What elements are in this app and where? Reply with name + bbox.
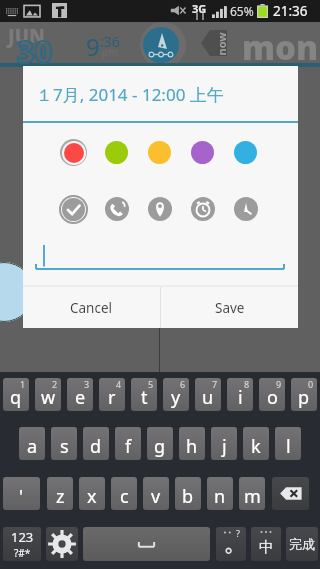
button[interactable]: c bbox=[111, 477, 137, 510]
button[interactable]: Space bbox=[83, 527, 210, 561]
staticText: m bbox=[244, 484, 261, 509]
button[interactable]: i bbox=[227, 378, 253, 411]
staticText: k bbox=[251, 434, 261, 459]
staticText: 9 bbox=[276, 378, 282, 390]
button[interactable]: o bbox=[259, 378, 285, 411]
button[interactable]: t bbox=[131, 378, 157, 411]
button[interactable]: ' bbox=[3, 477, 40, 510]
button[interactable]: r bbox=[99, 378, 125, 411]
button[interactable]: Colour bbox=[224, 131, 267, 173]
staticText: 2 bbox=[52, 378, 58, 390]
staticText: 3G bbox=[192, 1, 207, 16]
staticText: JUN bbox=[8, 23, 45, 49]
staticText: now bbox=[213, 31, 228, 55]
button[interactable]: Cancel bbox=[23, 287, 160, 328]
button[interactable]: Reminder type bbox=[224, 188, 267, 230]
staticText: n bbox=[214, 484, 226, 509]
button[interactable]: q bbox=[3, 378, 29, 411]
staticText: t bbox=[141, 385, 148, 410]
staticText: f bbox=[125, 434, 132, 459]
staticText: ?#* bbox=[14, 546, 31, 560]
button[interactable]: Save bbox=[161, 287, 298, 328]
button[interactable]: d bbox=[83, 427, 109, 460]
staticText: z bbox=[56, 484, 65, 509]
button[interactable]: a bbox=[19, 427, 45, 460]
staticText: 4 bbox=[116, 378, 122, 390]
button[interactable]: k bbox=[243, 427, 269, 460]
button[interactable]: Colour bbox=[95, 131, 138, 173]
staticText: h bbox=[186, 434, 198, 459]
staticText: r bbox=[108, 385, 116, 410]
button[interactable]: y bbox=[163, 378, 189, 411]
button[interactable]: w bbox=[35, 378, 61, 411]
button[interactable]: e bbox=[67, 378, 93, 411]
button[interactable]: Reminder type bbox=[95, 188, 138, 230]
button[interactable]: 完成 bbox=[286, 527, 318, 561]
staticText: 123 bbox=[11, 528, 34, 546]
staticText: １7月, 2014 - 12:00 上午 bbox=[36, 83, 224, 106]
button[interactable]: Settings bbox=[46, 527, 78, 561]
button[interactable]: f bbox=[115, 427, 141, 460]
staticText: j bbox=[222, 434, 227, 459]
button[interactable]: Backspace bbox=[272, 477, 309, 510]
button[interactable]: x bbox=[79, 477, 105, 510]
staticText: 30 bbox=[17, 31, 53, 72]
staticText: 完成 bbox=[289, 536, 315, 552]
staticText: 5 bbox=[148, 378, 154, 390]
button[interactable]: Reminder type bbox=[138, 188, 181, 230]
button[interactable]: u bbox=[195, 378, 221, 411]
button[interactable]: Colour bbox=[181, 131, 224, 173]
button[interactable]: Reminder type bbox=[52, 188, 95, 230]
staticText: ' bbox=[19, 484, 24, 509]
staticText: u bbox=[202, 385, 214, 410]
button[interactable]: p bbox=[291, 378, 317, 411]
staticText: 8 bbox=[244, 378, 250, 390]
button[interactable]: Colour bbox=[138, 131, 181, 173]
staticText: o bbox=[267, 385, 278, 410]
staticText: 21:36 bbox=[273, 2, 308, 20]
staticText: v bbox=[151, 484, 161, 509]
staticText: i bbox=[238, 385, 243, 410]
staticText: pm bbox=[102, 45, 119, 59]
button[interactable]: 中 bbox=[251, 527, 281, 561]
staticText: :36 bbox=[100, 32, 120, 51]
button[interactable]: v bbox=[143, 477, 169, 510]
button[interactable]: Numbers and symbols bbox=[3, 527, 41, 561]
staticText: g bbox=[154, 434, 166, 459]
button[interactable]: Reminder type bbox=[181, 188, 224, 230]
staticText: a bbox=[27, 434, 38, 459]
staticText: d bbox=[90, 434, 102, 459]
button[interactable]: b bbox=[175, 477, 201, 510]
staticText: ? bbox=[236, 527, 240, 539]
staticText: 7 bbox=[212, 378, 218, 390]
staticText: c bbox=[120, 484, 129, 509]
button[interactable]: Colour bbox=[52, 131, 95, 173]
button[interactable]: z bbox=[47, 477, 73, 510]
staticText: Save bbox=[215, 299, 245, 317]
button[interactable]: g bbox=[147, 427, 173, 460]
staticText: l bbox=[286, 434, 291, 459]
button[interactable]: n bbox=[207, 477, 233, 510]
staticText: x bbox=[87, 484, 97, 509]
button[interactable]: m bbox=[239, 477, 265, 510]
staticText: e bbox=[75, 385, 86, 410]
staticText: b bbox=[182, 484, 194, 509]
staticText: 6 bbox=[180, 378, 186, 390]
button[interactable]: l bbox=[275, 427, 301, 460]
staticText: 9 bbox=[86, 30, 100, 63]
button[interactable]: j bbox=[211, 427, 237, 460]
staticText: w bbox=[41, 385, 56, 410]
staticText: 65% bbox=[230, 3, 254, 19]
staticText: Cancel bbox=[70, 299, 113, 317]
button[interactable]: Punctuation bbox=[216, 527, 246, 561]
staticText: 中 bbox=[259, 538, 274, 557]
staticText: 3 bbox=[84, 378, 90, 390]
staticText: 0 bbox=[308, 378, 314, 390]
staticText: p bbox=[298, 385, 310, 410]
staticText: y bbox=[171, 385, 181, 410]
button[interactable]: h bbox=[179, 427, 205, 460]
staticText: 1 bbox=[20, 378, 26, 390]
staticText: s bbox=[60, 434, 69, 459]
button[interactable]: s bbox=[51, 427, 77, 460]
staticText: q bbox=[10, 385, 22, 410]
